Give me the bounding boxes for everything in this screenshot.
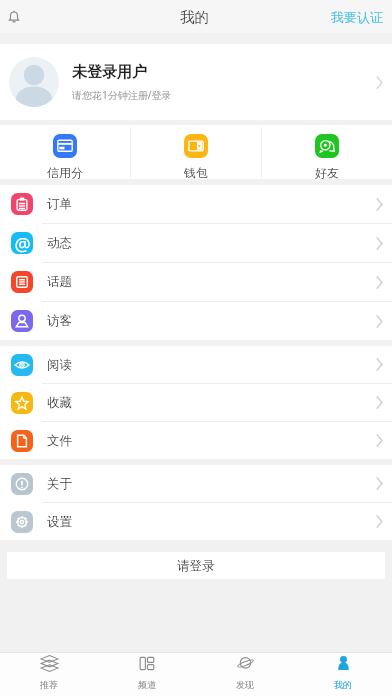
button[interactable]: @ xyxy=(0,224,392,262)
staticText: 订单 xyxy=(47,196,72,212)
button[interactable]: 我要认证 xyxy=(331,9,383,25)
button[interactable]: 话题 xyxy=(0,263,392,301)
button[interactable]: 我的 xyxy=(294,653,392,690)
button[interactable]: Notifications xyxy=(1,4,27,30)
button[interactable]: 访客 xyxy=(0,302,392,340)
button[interactable]: 推荐 xyxy=(0,653,98,690)
staticText: 我的 xyxy=(180,8,209,26)
button[interactable]: 发现 xyxy=(196,653,294,690)
button[interactable]: 收藏 xyxy=(0,384,392,421)
button[interactable]: 订单 xyxy=(0,185,392,223)
staticText: 访客 xyxy=(47,313,72,329)
button[interactable]: 信用分 xyxy=(0,125,130,179)
button[interactable]: 请登录 xyxy=(7,552,385,579)
staticText: 好友 xyxy=(315,165,339,179)
button[interactable]: 阅读 xyxy=(0,346,392,383)
staticText: 请您花1分钟注册/登录 xyxy=(72,88,172,102)
staticText: 关于 xyxy=(47,476,72,492)
button[interactable]: 未登录用户 xyxy=(0,44,392,120)
button[interactable]: 频道 xyxy=(98,653,196,690)
staticText: 我的 xyxy=(334,679,352,690)
staticText: 发现 xyxy=(236,679,254,690)
staticText: 频道 xyxy=(138,679,156,690)
button[interactable]: 好友 xyxy=(262,125,392,179)
button[interactable]: 文件 xyxy=(0,422,392,459)
staticText: 话题 xyxy=(47,274,72,290)
button[interactable]: 钱包 xyxy=(131,125,261,179)
button[interactable]: 关于 xyxy=(0,465,392,502)
staticText: 阅读 xyxy=(47,357,72,373)
staticText: 设置 xyxy=(47,514,72,530)
staticText: 推荐 xyxy=(40,679,58,690)
staticText: 收藏 xyxy=(47,395,72,411)
staticText: 动态 xyxy=(47,235,72,251)
staticText: 文件 xyxy=(47,433,72,449)
staticText: 未登录用户 xyxy=(72,63,147,82)
button[interactable]: 设置 xyxy=(0,503,392,540)
staticText: 信用分 xyxy=(47,165,83,179)
staticText: 请登录 xyxy=(177,558,215,574)
staticText: @ xyxy=(14,232,31,254)
staticText: 钱包 xyxy=(184,165,208,179)
